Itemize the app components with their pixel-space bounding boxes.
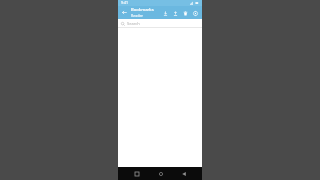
staticText: 9:41 bbox=[121, 0, 128, 5]
button[interactable]: Back bbox=[120, 8, 129, 17]
button[interactable]: Upload bbox=[170, 8, 180, 18]
button[interactable]: Recents bbox=[131, 168, 142, 179]
button[interactable]: Search bbox=[118, 19, 202, 28]
staticText: Reader bbox=[131, 13, 143, 18]
button[interactable]: Settings bbox=[190, 8, 200, 18]
staticText: Bookmarks bbox=[131, 7, 154, 13]
button[interactable]: Bookmarks bbox=[131, 7, 160, 18]
button[interactable]: Delete bbox=[180, 8, 190, 18]
staticText: Search bbox=[127, 21, 140, 26]
button[interactable]: Back bbox=[178, 168, 189, 179]
button[interactable]: Home bbox=[155, 168, 166, 179]
button[interactable]: Download bbox=[160, 8, 170, 18]
